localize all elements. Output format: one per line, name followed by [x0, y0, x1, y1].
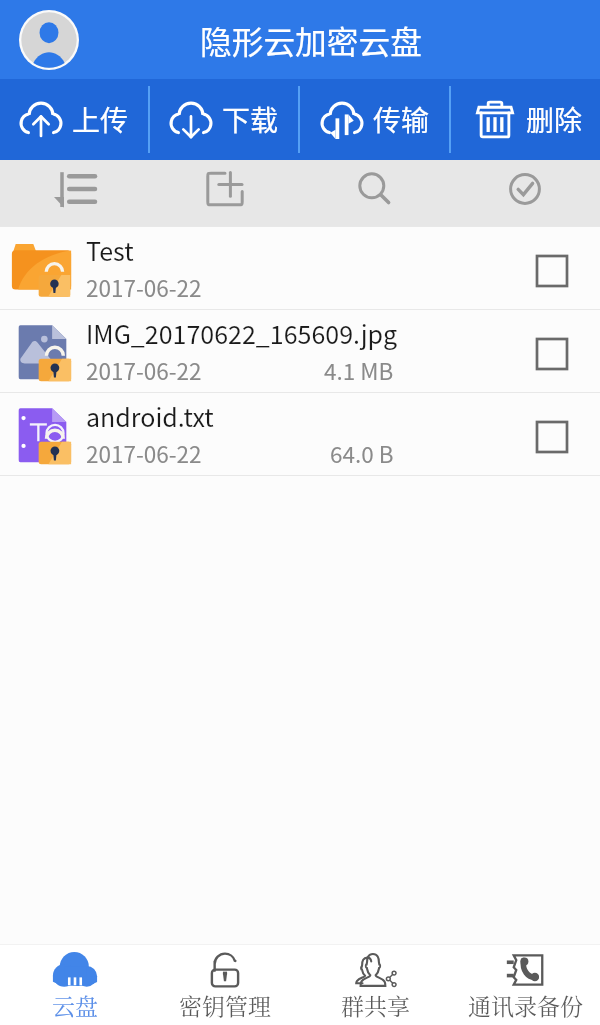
staticText: android.txt: [86, 398, 214, 434]
button[interactable]: IMG_20170622_165609.jpg: [0, 310, 600, 393]
button[interactable]: New folder: [150, 160, 300, 226]
button[interactable]: android.txt: [0, 393, 600, 476]
staticText: Test: [86, 232, 134, 268]
staticText: 2017-06-22: [86, 354, 202, 387]
button[interactable]: Sort: [0, 160, 150, 226]
button[interactable]: 密钥管理: [150, 945, 300, 1025]
staticText: 密钥管理: [179, 989, 271, 1022]
staticText: 传输: [373, 99, 430, 140]
button[interactable]: Select IMG_20170622_165609.jpg: [504, 310, 600, 392]
staticText: 群共享: [341, 989, 410, 1022]
staticText: 下载: [222, 99, 279, 140]
button[interactable]: Search: [300, 160, 450, 226]
button[interactable]: 上传: [0, 79, 148, 160]
button[interactable]: 删除: [451, 79, 600, 160]
button[interactable]: Select Test: [504, 227, 600, 309]
button[interactable]: Select android.txt: [504, 393, 600, 475]
button[interactable]: 群共享: [300, 945, 450, 1025]
staticText: 云盘: [52, 989, 98, 1022]
staticText: 64.0 B: [330, 437, 394, 470]
button[interactable]: Test: [0, 227, 600, 310]
staticText: 隐形云加密云盘: [200, 17, 422, 63]
staticText: 2017-06-22: [86, 271, 202, 304]
button[interactable]: Profile: [19, 10, 79, 70]
button[interactable]: Select all: [450, 160, 600, 226]
staticText: 通讯录备份: [468, 989, 583, 1022]
staticText: 4.1 MB: [324, 354, 394, 387]
button[interactable]: 下载: [150, 79, 298, 160]
button[interactable]: 云盘: [0, 945, 150, 1025]
staticText: 2017-06-22: [86, 437, 202, 470]
button[interactable]: 通讯录备份: [450, 945, 600, 1025]
button[interactable]: 传输: [300, 79, 449, 160]
staticText: 上传: [72, 99, 129, 140]
staticText: 删除: [526, 99, 583, 140]
staticText: IMG_20170622_165609.jpg: [86, 315, 398, 351]
